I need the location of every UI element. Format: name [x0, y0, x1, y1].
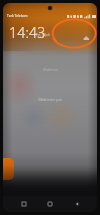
- staticText: 14:43: [9, 23, 46, 42]
- button[interactable]: Home: [44, 198, 56, 210]
- staticText: Bildirimler yok: [38, 97, 62, 102]
- staticText: Watch me: [43, 68, 58, 72]
- button[interactable]: 14:43: [9, 23, 46, 42]
- button[interactable]: Recent apps: [18, 198, 30, 210]
- staticText: Pzt, 3 Şub: [36, 33, 50, 37]
- button[interactable]: App shortcut: [3, 158, 14, 180]
- button[interactable]: Back: [71, 198, 83, 210]
- button[interactable]: Weather: [81, 33, 91, 43]
- staticText: Turk Telekom: [7, 14, 28, 18]
